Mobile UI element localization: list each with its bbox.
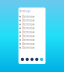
staticText: Item row	[22, 38, 34, 42]
staticText: Item row	[22, 30, 34, 34]
staticText: Item row	[22, 23, 34, 26]
staticText: Item row	[22, 34, 34, 38]
staticText: >	[42, 16, 43, 17]
staticText: Item row	[22, 19, 34, 22]
staticText: Settings	[19, 9, 30, 13]
staticText: Item row	[22, 15, 34, 18]
staticText: Item row	[22, 42, 34, 46]
staticText: Item row	[22, 26, 34, 30]
staticText: Item row	[22, 46, 34, 49]
staticText: >	[42, 47, 43, 49]
